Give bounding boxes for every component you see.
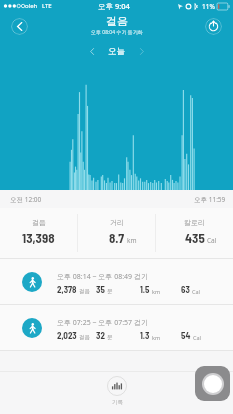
staticText: 오전 12:00 — [10, 195, 42, 204]
staticText: 1.3 — [140, 330, 150, 341]
staticText: Cal — [193, 334, 201, 341]
staticText: 오늘 — [108, 46, 125, 57]
staticText: 칼로리 — [184, 218, 205, 227]
staticText: 8.7 — [109, 230, 125, 246]
button[interactable]: Back — [11, 18, 28, 35]
button[interactable]: Assistive touch — [195, 366, 230, 401]
staticText: 1.5 — [140, 284, 150, 295]
staticText: km — [152, 334, 161, 341]
staticText: 2,378 — [57, 284, 77, 295]
staticText: 오후 11:59 — [194, 195, 226, 204]
staticText: 13,398 — [22, 230, 55, 246]
staticText: 2,023 — [57, 330, 77, 341]
staticText: 오후 08:14 ~ 오후 08:49 걷기 — [57, 272, 148, 282]
button[interactable]: Next day — [133, 43, 149, 59]
button[interactable]: 걸음 — [0, 208, 77, 246]
button[interactable]: 기록 — [107, 376, 127, 406]
button[interactable]: 거리 — [78, 208, 155, 246]
staticText: 54 — [181, 330, 191, 341]
button[interactable]: 오후 08:14 ~ 오후 08:49 걷기 — [0, 259, 233, 304]
staticText: 435 — [185, 230, 205, 246]
button[interactable]: Sync — [205, 18, 222, 35]
staticText: 분 — [107, 334, 113, 341]
staticText: Cal — [207, 236, 217, 245]
staticText: oleh — [25, 2, 38, 10]
staticText: 오후 07:25 ~ 오후 07:57 걷기 — [57, 318, 148, 328]
staticText: Cal — [192, 288, 200, 295]
staticText: 11% — [202, 2, 215, 11]
staticText: km — [152, 288, 161, 295]
staticText: 걸음 — [32, 218, 46, 227]
button[interactable]: 오후 07:25 ~ 오후 07:57 걷기 — [0, 305, 233, 350]
staticText: 기록 — [112, 399, 123, 406]
staticText: km — [127, 236, 137, 245]
staticText: 35 — [96, 284, 105, 295]
staticText: 걸음 — [106, 14, 128, 28]
button[interactable]: Previous day — [84, 43, 100, 59]
button[interactable]: 칼로리 — [156, 208, 233, 246]
staticText: 분 — [107, 288, 113, 295]
staticText: 32 — [96, 330, 105, 341]
staticText: LTE — [42, 2, 52, 10]
staticText: 오후 9:04 — [98, 1, 130, 11]
staticText: 걸음 — [79, 288, 90, 295]
staticText: 63 — [181, 284, 190, 295]
staticText: 걸음 — [79, 334, 90, 341]
staticText: 오후 08:04 수기 동기화 — [91, 29, 143, 36]
staticText: 거리 — [110, 218, 124, 227]
